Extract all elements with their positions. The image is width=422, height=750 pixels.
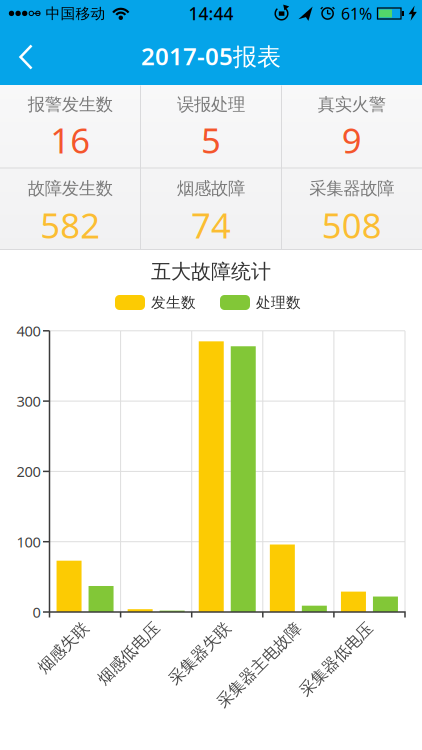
- staticText: 处理数: [256, 293, 301, 311]
- staticText: 582: [40, 202, 100, 248]
- staticText: 五大故障统计: [151, 259, 271, 284]
- staticText: 采集器故障: [309, 178, 394, 199]
- staticText: 5: [201, 117, 221, 163]
- staticText: 中国移动: [45, 4, 105, 22]
- staticText: 14:44: [188, 2, 233, 25]
- staticText: 误报处理: [177, 94, 245, 115]
- staticText: 0: [32, 602, 40, 622]
- staticText: 采集器失联: [160, 644, 240, 663]
- staticText: 100: [16, 532, 40, 551]
- staticText: 400: [16, 321, 40, 341]
- staticText: 16: [50, 117, 90, 163]
- button[interactable]: [3, 35, 47, 79]
- staticText: 2017-05报表: [141, 40, 281, 72]
- staticText: 9: [342, 117, 362, 163]
- staticText: 采集器低电压: [288, 649, 384, 669]
- staticText: 故障发生数: [28, 178, 113, 199]
- staticText: 采集器主电故障: [203, 655, 315, 675]
- staticText: 508: [322, 202, 382, 248]
- staticText: 真实火警: [318, 94, 386, 115]
- staticText: 发生数: [151, 293, 196, 311]
- staticText: 烟感失联: [31, 638, 95, 658]
- staticText: 200: [16, 462, 40, 481]
- staticText: 300: [16, 391, 40, 411]
- staticText: 烟感低电压: [89, 644, 169, 663]
- staticText: 报警发生数: [28, 94, 113, 115]
- staticText: 61%: [341, 3, 372, 24]
- staticText: 烟感故障: [177, 178, 245, 199]
- staticText: 74: [191, 202, 231, 248]
